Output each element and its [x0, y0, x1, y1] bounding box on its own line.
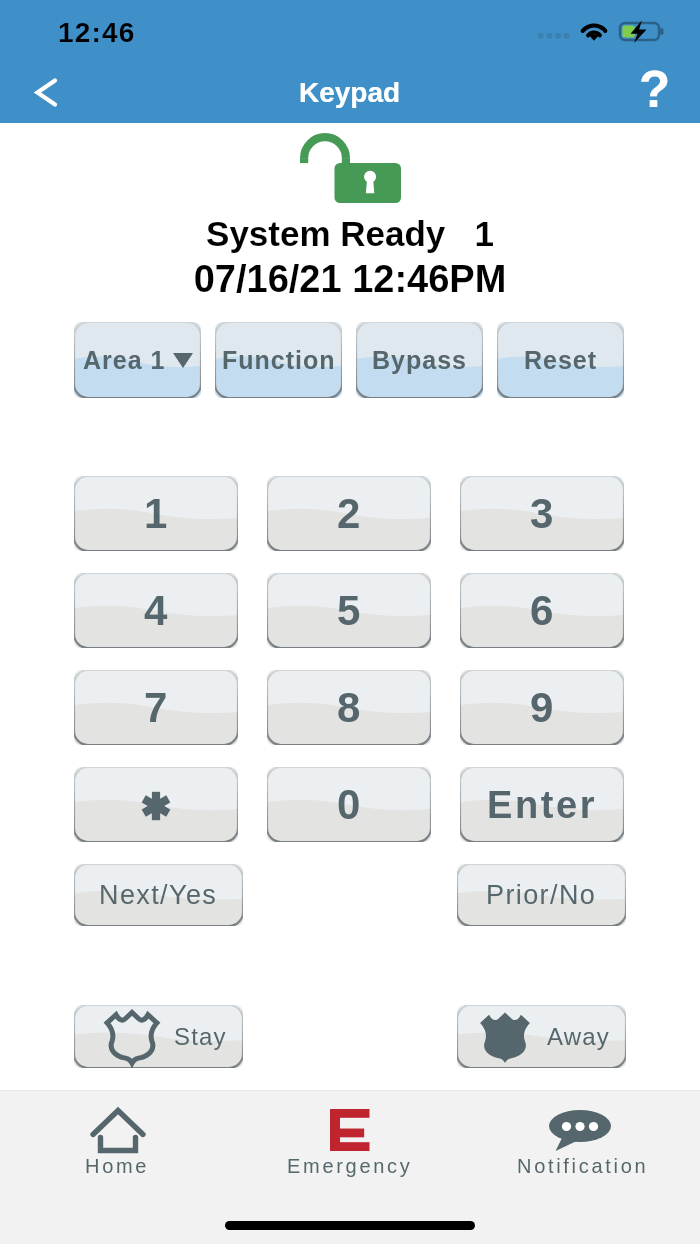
staticText: 6 [530, 587, 554, 634]
staticText: Enter [487, 784, 598, 826]
button[interactable]: Next/Yes [74, 864, 243, 926]
button[interactable]: Function [215, 322, 342, 398]
button[interactable]: 4 [74, 573, 238, 648]
button[interactable]: 7 [74, 670, 238, 745]
button[interactable]: Home [0, 1090, 234, 1200]
button[interactable]: 1 [74, 476, 238, 551]
button[interactable]: Enter [460, 767, 624, 842]
staticText: Function [222, 346, 336, 374]
staticText: 5 [337, 587, 361, 634]
button[interactable]: Back [10, 62, 78, 123]
button[interactable]: Notification [466, 1090, 700, 1200]
staticText: Next/Yes [99, 880, 218, 910]
staticText: Away [547, 1023, 611, 1050]
button[interactable]: Emergency [233, 1090, 467, 1200]
staticText: ? [639, 61, 671, 118]
button[interactable]: Bypass [356, 322, 483, 398]
button[interactable]: Reset [497, 322, 624, 398]
staticText: 2 [337, 490, 361, 537]
button[interactable]: Help [632, 62, 700, 123]
staticText: 7 [144, 684, 168, 731]
staticText: 07/16/21 12:46PM [0, 258, 700, 300]
staticText: Emergency [287, 1155, 413, 1177]
button[interactable]: Area 1 [74, 322, 201, 398]
staticText: Prior/No [486, 880, 597, 910]
staticText: 8 [337, 684, 361, 731]
button[interactable]: Stay [74, 1005, 243, 1068]
staticText: 0 [337, 781, 361, 828]
staticText: 3 [530, 490, 554, 537]
staticText: Keypad [299, 77, 401, 108]
staticText: Reset [524, 346, 598, 374]
staticText: 4 [144, 587, 168, 634]
staticText: Home [85, 1155, 150, 1177]
staticText: 9 [530, 684, 554, 731]
button[interactable]: 8 [267, 670, 431, 745]
button[interactable]: 6 [460, 573, 624, 648]
button[interactable]: 3 [460, 476, 624, 551]
staticText: Stay [174, 1023, 227, 1050]
button[interactable]: Prior/No [457, 864, 626, 926]
button[interactable]: Away [457, 1005, 626, 1068]
staticText: Area 1 [83, 346, 166, 374]
button[interactable]: 0 [267, 767, 431, 842]
button[interactable]: 9 [460, 670, 624, 745]
button[interactable] [74, 767, 238, 842]
staticText: 12:46 [58, 17, 136, 48]
button[interactable]: 5 [267, 573, 431, 648]
staticText: System Ready 1 [0, 214, 700, 253]
staticText: Notification [517, 1155, 649, 1177]
staticText: Bypass [372, 346, 467, 374]
button[interactable]: 2 [267, 476, 431, 551]
staticText: 1 [144, 490, 168, 537]
